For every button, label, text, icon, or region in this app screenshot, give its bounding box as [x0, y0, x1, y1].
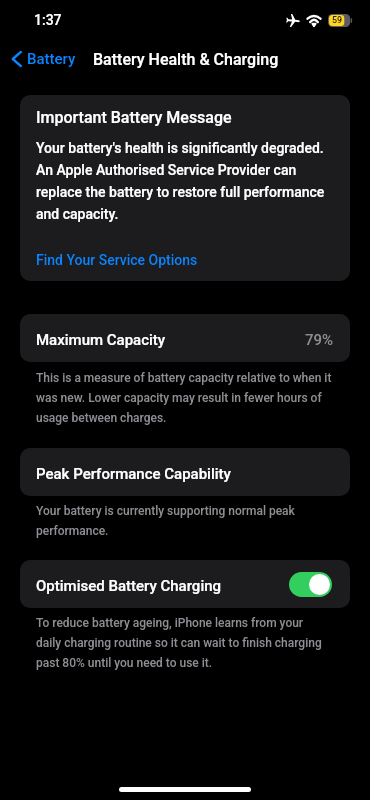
staticText: 79% — [305, 331, 334, 349]
staticText: Important Battery Message — [36, 108, 232, 127]
staticText: Optimised Battery Charging — [36, 577, 222, 595]
staticText: To reduce battery ageing, iPhone learns … — [36, 611, 322, 671]
staticText: Maximum Capacity — [36, 331, 166, 349]
button[interactable]: Maximum Capacity — [20, 314, 350, 362]
staticText: Peak Performance Capability — [36, 465, 231, 483]
staticText: Battery — [27, 50, 76, 68]
staticText: Your battery is currently supporting nor… — [36, 499, 295, 539]
other: Wi-Fi — [307, 15, 321, 26]
staticText: 59 — [332, 15, 343, 26]
other: Battery 59 percent, Low Power Mode — [328, 14, 352, 27]
staticText: Battery Health & Charging — [93, 50, 279, 69]
button[interactable]: Find Your Service Options — [36, 252, 198, 268]
staticText: This is a measure of battery capacity re… — [36, 366, 332, 426]
other: Airplane mode — [286, 14, 300, 27]
staticText: 1:37 — [34, 12, 62, 28]
button[interactable]: Peak Performance Capability — [20, 448, 350, 496]
staticText: Your battery's health is significantly d… — [36, 136, 325, 224]
button[interactable]: Battery — [0, 50, 84, 68]
button[interactable]: Optimised Battery Charging, on — [289, 572, 332, 597]
